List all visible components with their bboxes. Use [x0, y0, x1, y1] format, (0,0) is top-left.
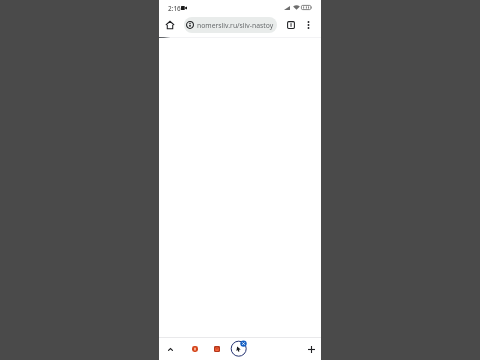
button[interactable]: App shortcut 2 [210, 342, 224, 356]
button[interactable]: Open menu [228, 339, 250, 360]
staticText: 2:16 [168, 4, 181, 13]
staticText: nomersliv.ru/sliv-nastoy [197, 21, 274, 30]
button[interactable]: Tabs [282, 16, 300, 34]
button[interactable]: New tab [304, 342, 318, 356]
button[interactable]: More options [299, 16, 317, 34]
button[interactable]: Home [161, 16, 179, 34]
button[interactable]: App shortcut [188, 342, 202, 356]
button[interactable]: nomersliv.ru/sliv-nastoy [184, 17, 277, 33]
button[interactable]: Expand toolbar [163, 342, 177, 356]
